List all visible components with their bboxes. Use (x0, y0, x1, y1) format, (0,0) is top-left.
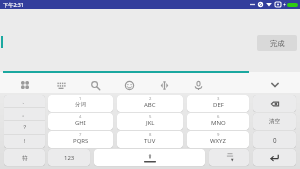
button[interactable]: 7 (48, 131, 113, 148)
button[interactable]: Move cursor (155, 76, 173, 94)
staticText: 2 (149, 96, 152, 102)
staticText: 5 (149, 114, 152, 120)
button[interactable]: 1 (48, 95, 113, 112)
button[interactable]: 123 (48, 149, 90, 166)
button[interactable]: 符 (4, 149, 45, 166)
button[interactable]: ？ (4, 121, 45, 134)
button[interactable]: ！ (4, 135, 45, 148)
staticText: MNO (211, 119, 226, 127)
staticText: ABC (144, 101, 156, 109)
staticText: 下午2:31 (3, 1, 24, 8)
button[interactable]: Backspace (253, 95, 296, 112)
staticText: 清空 (269, 118, 281, 125)
button[interactable]: 5 (117, 113, 183, 130)
staticText: 123 (64, 154, 75, 162)
button[interactable]: Enter (253, 149, 296, 166)
button[interactable]: Emoji (120, 76, 138, 94)
button[interactable]: 3 (187, 95, 249, 112)
staticText: PQRS (73, 137, 89, 145)
staticText: JKL (146, 119, 155, 127)
staticText: 8 (149, 132, 152, 138)
button[interactable]: 4 (48, 113, 113, 130)
button[interactable]: 2 (117, 95, 183, 112)
staticText: DEF (213, 101, 224, 109)
button[interactable]: Keyboard (52, 76, 70, 94)
button[interactable]: Punctuation (209, 149, 249, 166)
staticText: TUV (144, 137, 156, 145)
button[interactable]: 清空 (253, 113, 296, 130)
staticText: 1 (79, 96, 82, 102)
staticText: 0 (273, 136, 277, 144)
staticText: 完成 (270, 39, 285, 48)
staticText: 。 (22, 111, 28, 118)
staticText: 符 (22, 154, 28, 161)
button[interactable]: 0 (253, 131, 296, 148)
button[interactable]: 6 (187, 113, 249, 130)
staticText: WXYZ (210, 137, 226, 145)
staticText: 9 (217, 132, 220, 138)
staticText: GHI (75, 119, 86, 127)
button[interactable]: Apps (16, 76, 34, 94)
staticText: 3 (217, 96, 220, 102)
staticText: 6 (217, 114, 220, 120)
button[interactable]: Search (86, 76, 104, 94)
button[interactable]: Hide keyboard (266, 76, 284, 94)
button[interactable]: 9 (187, 131, 249, 148)
staticText: ？ (22, 124, 28, 131)
staticText: 4 (79, 114, 82, 120)
button[interactable]: 完成 (257, 35, 297, 51)
button[interactable]: Voice input (189, 76, 207, 94)
staticText: 7 (79, 132, 82, 138)
button[interactable]: Space (94, 149, 205, 166)
staticText: ！ (22, 138, 28, 145)
staticText: 分词 (75, 101, 86, 108)
button[interactable]: 8 (117, 131, 183, 148)
staticText: 、 (22, 98, 28, 105)
